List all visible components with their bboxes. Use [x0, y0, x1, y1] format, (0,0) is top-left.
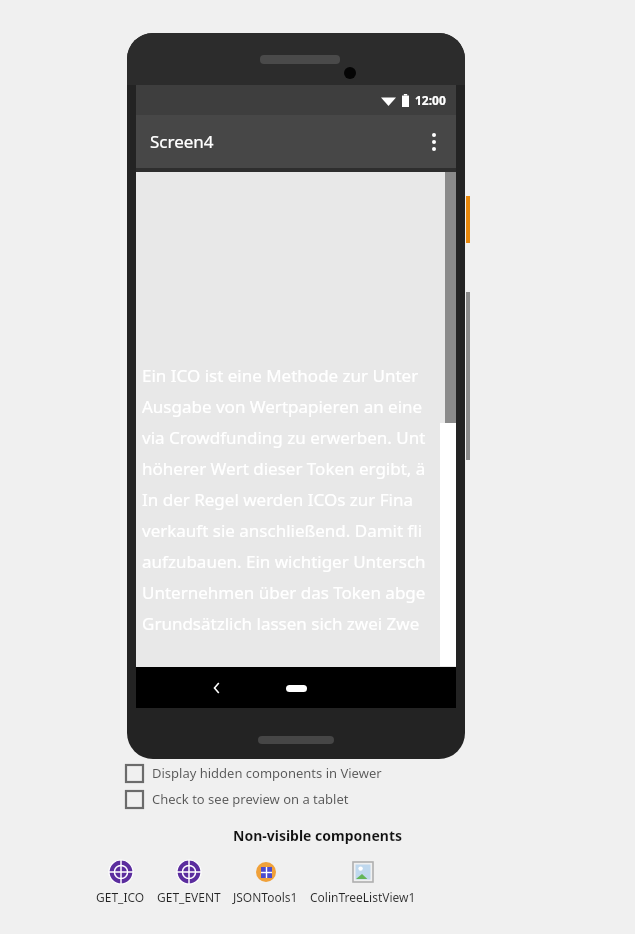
staticText: GET_ICO	[96, 889, 145, 905]
staticText: via Crowdfunding zu erwerben. Unt	[142, 426, 426, 449]
staticText: verkauft sie anschließend. Damit fli	[142, 519, 423, 542]
staticText: ColinTreeListView1	[310, 889, 416, 905]
button[interactable]: Web component	[96, 859, 145, 905]
other: Web component	[108, 859, 134, 885]
other: List view	[350, 859, 376, 885]
staticText: In der Regel werden ICOs zur Fina	[142, 488, 413, 511]
staticText: aufzubauen. Ein wichtiger Untersch	[142, 550, 426, 573]
staticText: Unternehmen über das Token abge	[142, 581, 426, 604]
button[interactable]: Back	[202, 667, 232, 708]
staticText: Check to see preview on a tablet	[152, 790, 349, 808]
staticText: höherer Wert dieser Token ergibt, ä	[142, 457, 426, 480]
staticText: 12:00	[415, 92, 446, 108]
staticText: Ausgabe von Wertpapieren an eine	[142, 395, 423, 418]
staticText: Non-visible components	[0, 826, 635, 845]
staticText: Display hidden components in Viewer	[152, 764, 382, 782]
staticText: Ein ICO ist eine Methode zur Unter	[142, 364, 419, 387]
button[interactable]: List view	[310, 859, 416, 905]
staticText: Grundsätzlich lassen sich zwei Zwe	[142, 612, 420, 635]
other: Web component	[176, 859, 202, 885]
button[interactable]: Home	[278, 678, 314, 698]
button[interactable]: Check to see preview on a tablet	[126, 790, 349, 808]
staticText: GET_EVENT	[157, 889, 221, 905]
button[interactable]: More options	[412, 120, 456, 164]
staticText: JSONTools1	[233, 889, 298, 905]
button[interactable]: JSON tools	[233, 859, 298, 905]
other: JSON tools	[253, 859, 279, 885]
button[interactable]: Web component	[157, 859, 221, 905]
staticText: Screen4	[150, 130, 214, 153]
button[interactable]: Display hidden components in Viewer	[126, 764, 382, 782]
